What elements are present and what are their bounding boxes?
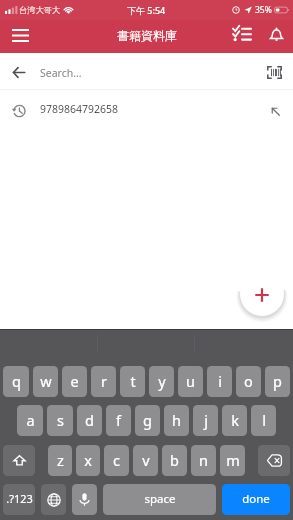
button[interactable]: i — [207, 366, 232, 397]
staticText: e — [70, 371, 79, 391]
staticText: c — [113, 450, 120, 470]
staticText: done — [242, 491, 270, 507]
button[interactable]: r — [91, 366, 116, 397]
button[interactable]: Menu — [5, 20, 35, 50]
button[interactable]: m — [220, 445, 245, 476]
button[interactable]: g — [135, 405, 160, 436]
button[interactable]: Insert suggestion — [264, 100, 286, 122]
button[interactable]: Backspace — [258, 445, 290, 476]
staticText: 35% — [255, 4, 272, 16]
button[interactable]: k — [222, 405, 247, 436]
button[interactable]: o — [236, 366, 261, 397]
button[interactable]: Voice input — [72, 484, 97, 515]
staticText: 台湾大哥大 — [19, 5, 60, 15]
staticText: p — [273, 371, 282, 391]
button[interactable]: 9789864792658 — [0, 90, 293, 124]
button[interactable]: e — [62, 366, 87, 397]
button[interactable]: v — [133, 445, 158, 476]
button[interactable]: y — [149, 366, 174, 397]
staticText: a — [26, 410, 35, 430]
button[interactable]: t — [120, 366, 145, 397]
button[interactable]: done — [222, 484, 290, 515]
staticText: 9789864792658 — [40, 102, 119, 116]
button[interactable]: n — [191, 445, 216, 476]
button[interactable]: j — [193, 405, 218, 436]
button[interactable]: a — [17, 405, 43, 436]
staticText: k — [231, 410, 239, 430]
staticText: z — [57, 450, 64, 470]
button[interactable]: c — [104, 445, 129, 476]
button[interactable]: Notifications — [263, 21, 289, 47]
staticText: b — [170, 450, 179, 470]
staticText: t — [130, 371, 136, 391]
button[interactable]: s — [47, 405, 73, 436]
staticText: h — [172, 410, 181, 430]
staticText: 書籍資料庫 — [117, 28, 177, 43]
button[interactable]: .?123 — [3, 484, 35, 515]
button[interactable]: h — [164, 405, 189, 436]
button[interactable]: Add — [240, 272, 284, 316]
button[interactable]: f — [106, 405, 131, 436]
staticText: m — [226, 450, 240, 470]
staticText: q — [12, 371, 21, 391]
button[interactable]: d — [77, 405, 102, 436]
staticText: space — [144, 491, 176, 507]
button[interactable]: b — [162, 445, 187, 476]
staticText: v — [142, 450, 150, 470]
button[interactable]: Shift — [3, 445, 35, 476]
button[interactable]: p — [265, 366, 290, 397]
staticText: .?123 — [6, 491, 33, 506]
staticText: u — [186, 371, 195, 391]
button[interactable]: Checklist — [229, 21, 255, 47]
button[interactable]: w — [33, 366, 58, 397]
button[interactable]: Back — [6, 60, 31, 85]
staticText: g — [143, 410, 152, 430]
button[interactable]: z — [48, 445, 72, 476]
staticText: s — [57, 410, 64, 430]
staticText: f — [116, 410, 121, 430]
button[interactable]: Change keyboard — [41, 484, 66, 515]
staticText: i — [218, 371, 222, 391]
staticText: x — [84, 450, 92, 470]
staticText: r — [101, 371, 107, 391]
button[interactable]: Scan barcode — [262, 60, 286, 84]
staticText: 下午 5:54 — [127, 4, 166, 16]
staticText: w — [40, 371, 52, 391]
staticText: l — [262, 410, 266, 430]
staticText: d — [85, 410, 94, 430]
staticText: n — [199, 450, 208, 470]
staticText: Search... — [40, 66, 82, 80]
staticText: o — [244, 371, 253, 391]
staticText: y — [158, 371, 166, 391]
button[interactable]: space — [103, 484, 216, 515]
button[interactable]: q — [3, 366, 29, 397]
button[interactable]: u — [178, 366, 203, 397]
button[interactable]: l — [251, 405, 276, 436]
button[interactable]: x — [76, 445, 100, 476]
staticText: j — [204, 410, 208, 430]
